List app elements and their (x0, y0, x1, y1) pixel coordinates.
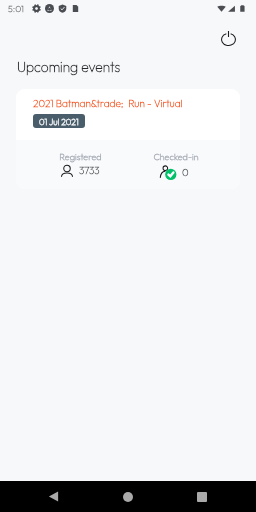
button[interactable]: Recents (185, 481, 219, 512)
staticText: Registered (59, 151, 102, 162)
staticText: 5:01 (8, 3, 25, 14)
button[interactable]: Back (36, 481, 70, 512)
staticText: 0 (182, 166, 189, 179)
staticText: Upcoming events (17, 58, 121, 75)
button[interactable]: 2021 Batman&trade; Run - Virtual (16, 89, 240, 189)
staticText: 2021 Batman&trade; Run - Virtual (33, 97, 183, 110)
staticText: 3733 (79, 164, 100, 177)
button[interactable]: Home (111, 481, 145, 512)
staticText: Checked-in (153, 151, 199, 162)
staticText: 01 Jul 2021 (39, 116, 79, 127)
button[interactable]: Log out (216, 26, 240, 50)
